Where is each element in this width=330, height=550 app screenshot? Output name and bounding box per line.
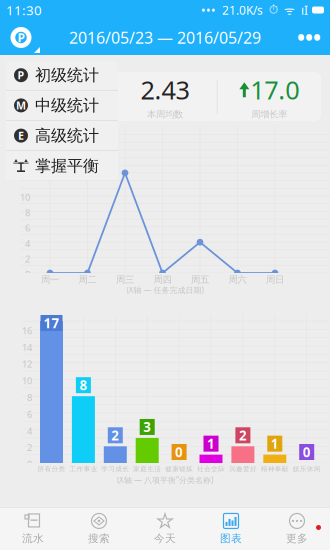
staticText: 1 [271, 435, 279, 452]
button[interactable]: 图表 [198, 508, 264, 550]
staticText: 4 [25, 237, 30, 250]
staticText: ıI [295, 2, 308, 18]
staticText: 高级统计 [35, 126, 99, 145]
staticText: 周日 [266, 274, 284, 285]
staticText: 2 [111, 426, 119, 444]
button[interactable]: 统计菜单 [0, 20, 42, 55]
staticText: 初级统计 [35, 65, 99, 85]
button[interactable]: 掌握平衡 [6, 151, 118, 181]
staticText: 0 [303, 443, 311, 461]
staticText: 周三 [116, 274, 134, 285]
staticText: 家庭生活 [133, 465, 161, 473]
staticText: 精神奉献 [261, 465, 289, 473]
staticText: 14 [22, 341, 32, 353]
staticText: 2 [25, 253, 30, 265]
staticText: 17.0 [250, 73, 299, 106]
staticText: 周二 [78, 274, 96, 285]
staticText: 社会交际 [197, 465, 225, 473]
staticText: P [17, 29, 24, 45]
staticText: 健康锻炼 [165, 465, 193, 473]
staticText: ••• [297, 23, 321, 52]
staticText: 21.0K/s [216, 2, 263, 18]
staticText: 1 [207, 435, 215, 452]
staticText: (X轴 — 任务完成日期) [126, 285, 203, 295]
staticText: 工作事业 [69, 465, 97, 473]
staticText: ••• [201, 2, 216, 18]
staticText: (X轴 — 八项平衡“分类名称) [117, 475, 213, 485]
staticText: 4 [27, 425, 32, 437]
staticText: 0 [175, 443, 183, 461]
staticText: 学习成长 [101, 465, 129, 473]
staticText: ᯤ [278, 2, 295, 18]
staticText: 12 [22, 358, 32, 370]
staticText: ⏱ [263, 4, 278, 16]
staticText: M [16, 98, 26, 112]
staticText: P [17, 68, 24, 82]
staticText: 8 [79, 376, 87, 394]
staticText: 2.43 [140, 73, 189, 106]
staticText: 本周均数 [147, 109, 183, 120]
button[interactable]: 更多选项 [288, 20, 330, 55]
staticText: 10 [22, 374, 32, 387]
staticText: 周六 [228, 274, 246, 285]
staticText: 10 [20, 191, 30, 203]
staticText: 0 [25, 268, 30, 280]
button[interactable]: P [6, 60, 118, 90]
staticText: 3 [143, 418, 151, 436]
staticText: 周四 [153, 274, 171, 285]
staticText: 搜索 [88, 532, 110, 545]
staticText: 2016/05/23 — 2016/05/29 [69, 27, 261, 48]
staticText: 11:30 [6, 1, 42, 19]
button[interactable]: 今天 [132, 508, 198, 550]
staticText: 8 [25, 206, 30, 219]
button[interactable]: E [6, 121, 118, 150]
staticText: 周五 [191, 274, 209, 285]
staticText: 6 [27, 408, 32, 420]
staticText: 16 [22, 324, 32, 337]
staticText: 6 [25, 222, 30, 234]
staticText: 2 [27, 441, 32, 454]
staticText: 周一 [41, 274, 59, 285]
staticText: 中级统计 [35, 96, 99, 115]
staticText: 2 [239, 426, 247, 444]
button[interactable]: 流水 [0, 508, 66, 550]
button[interactable]: 搜索 [66, 508, 132, 550]
staticText: 更多 [286, 532, 308, 545]
button[interactable]: M [6, 91, 118, 120]
staticText: 娱乐休闲 [293, 465, 321, 473]
staticText: 今天 [154, 532, 176, 545]
staticText: 掌握平衡 [35, 156, 99, 176]
staticText: 兴趣爱好 [229, 465, 257, 473]
staticText: 本周完成 [43, 109, 79, 120]
staticText: 17 [47, 73, 75, 106]
staticText: E [18, 128, 24, 143]
staticText: 图表 [220, 532, 242, 545]
staticText: 0 [27, 458, 32, 470]
staticText: 17 [43, 314, 59, 332]
staticText: 8 [27, 391, 32, 404]
staticText: 周增长率 [251, 109, 287, 120]
staticText: 所有分类 [37, 465, 65, 473]
button[interactable]: 更多 [264, 508, 330, 550]
staticText: 流水 [22, 532, 44, 545]
